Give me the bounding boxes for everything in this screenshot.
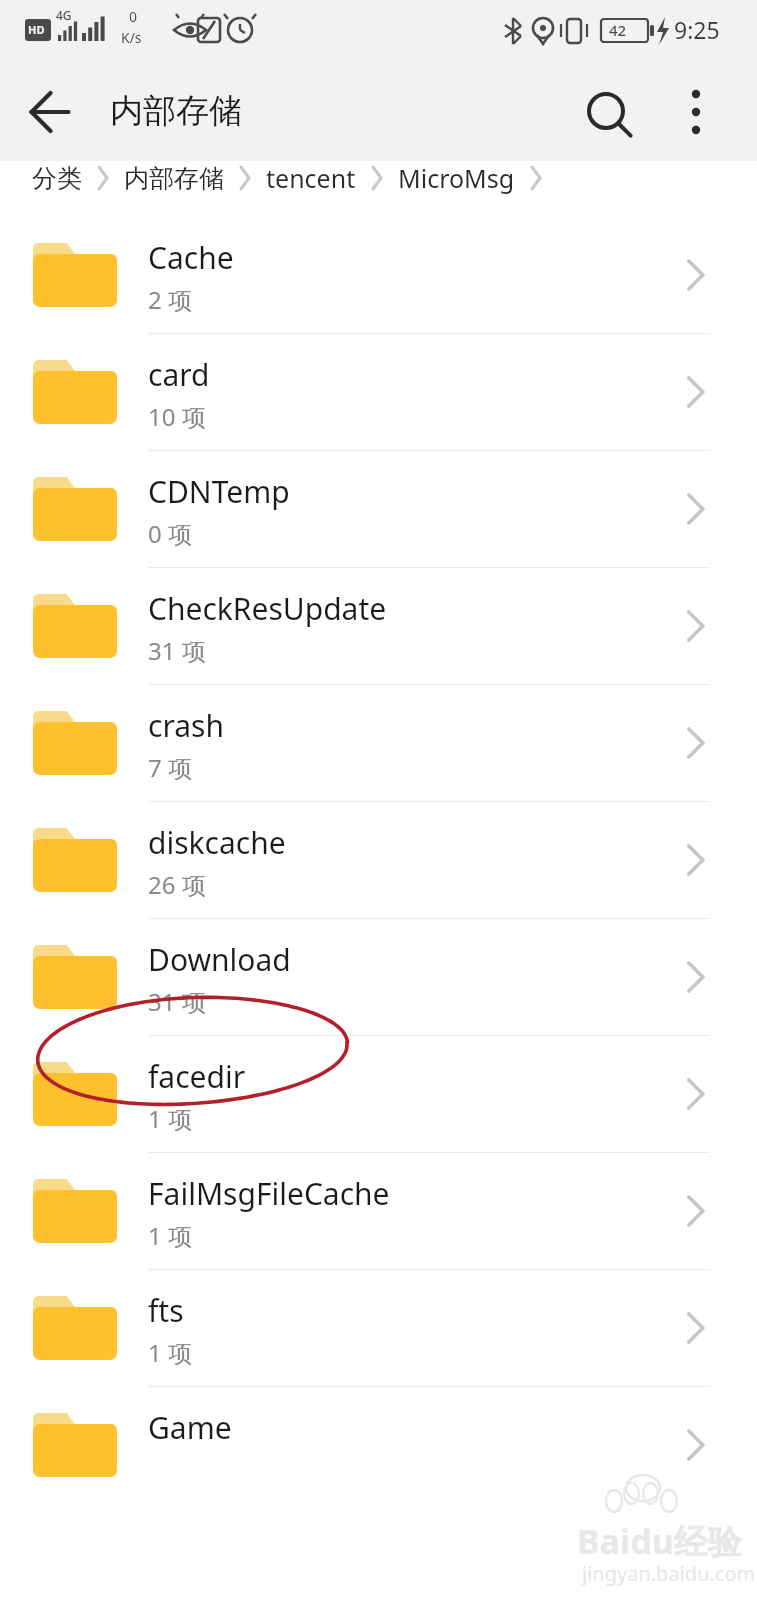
staticText: 1 项 [148,1102,192,1135]
button[interactable]: Cache [0,217,757,334]
button[interactable]: More options [666,82,726,142]
staticText: 4G [56,7,72,23]
staticText: 1 项 [148,1219,192,1252]
staticText: CheckResUpdate [148,588,387,629]
staticText: HD [28,22,45,37]
staticText: 42 [609,20,627,40]
staticText: 31 项 [148,634,206,667]
staticText: facedir [148,1056,246,1097]
staticText: 0 项 [148,517,192,550]
button[interactable]: Download [0,919,757,1036]
button[interactable]: CheckResUpdate [0,568,757,685]
staticText: 内部存储 [124,163,224,194]
staticText: diskcache [148,822,286,863]
staticText: 7 项 [148,751,192,784]
button[interactable]: FailMsgFileCache [0,1153,757,1270]
staticText: 1 项 [148,1336,192,1369]
staticText: tencent [266,161,356,195]
staticText: 0 [129,7,138,26]
staticText: jingyan.baidu.com [582,1560,756,1587]
button[interactable]: crash [0,685,757,802]
staticText: Game [148,1407,232,1448]
staticText: MicroMsg [398,161,515,195]
staticText: crash [148,705,224,746]
staticText: 分类 [32,163,82,194]
button[interactable]: Game [0,1387,757,1503]
staticText: Baidu经验 [577,1518,742,1564]
button[interactable]: 分类 [32,163,82,194]
button[interactable]: Back [18,80,82,144]
staticText: K/s [121,28,142,47]
staticText: 2 项 [148,283,192,316]
button[interactable]: fts [0,1270,757,1387]
staticText: 内部存储 [110,90,242,132]
button[interactable]: facedir [0,1036,757,1153]
staticText: fts [148,1290,184,1331]
button[interactable]: CDNTemp [0,451,757,568]
staticText: 9:25 [674,14,720,45]
staticText: FailMsgFileCache [148,1173,390,1214]
button[interactable]: diskcache [0,802,757,919]
button[interactable]: MicroMsg [398,161,515,195]
button[interactable]: card [0,334,757,451]
staticText: Download [148,939,291,980]
button[interactable]: Search [576,82,640,146]
staticText: Cache [148,237,234,278]
button[interactable]: tencent [266,161,356,195]
staticText: CDNTemp [148,471,290,512]
staticText: 31 项 [148,985,206,1018]
staticText: 10 项 [148,400,206,433]
staticText: card [148,354,210,395]
button[interactable]: 内部存储 [124,163,224,194]
staticText: 26 项 [148,868,206,901]
